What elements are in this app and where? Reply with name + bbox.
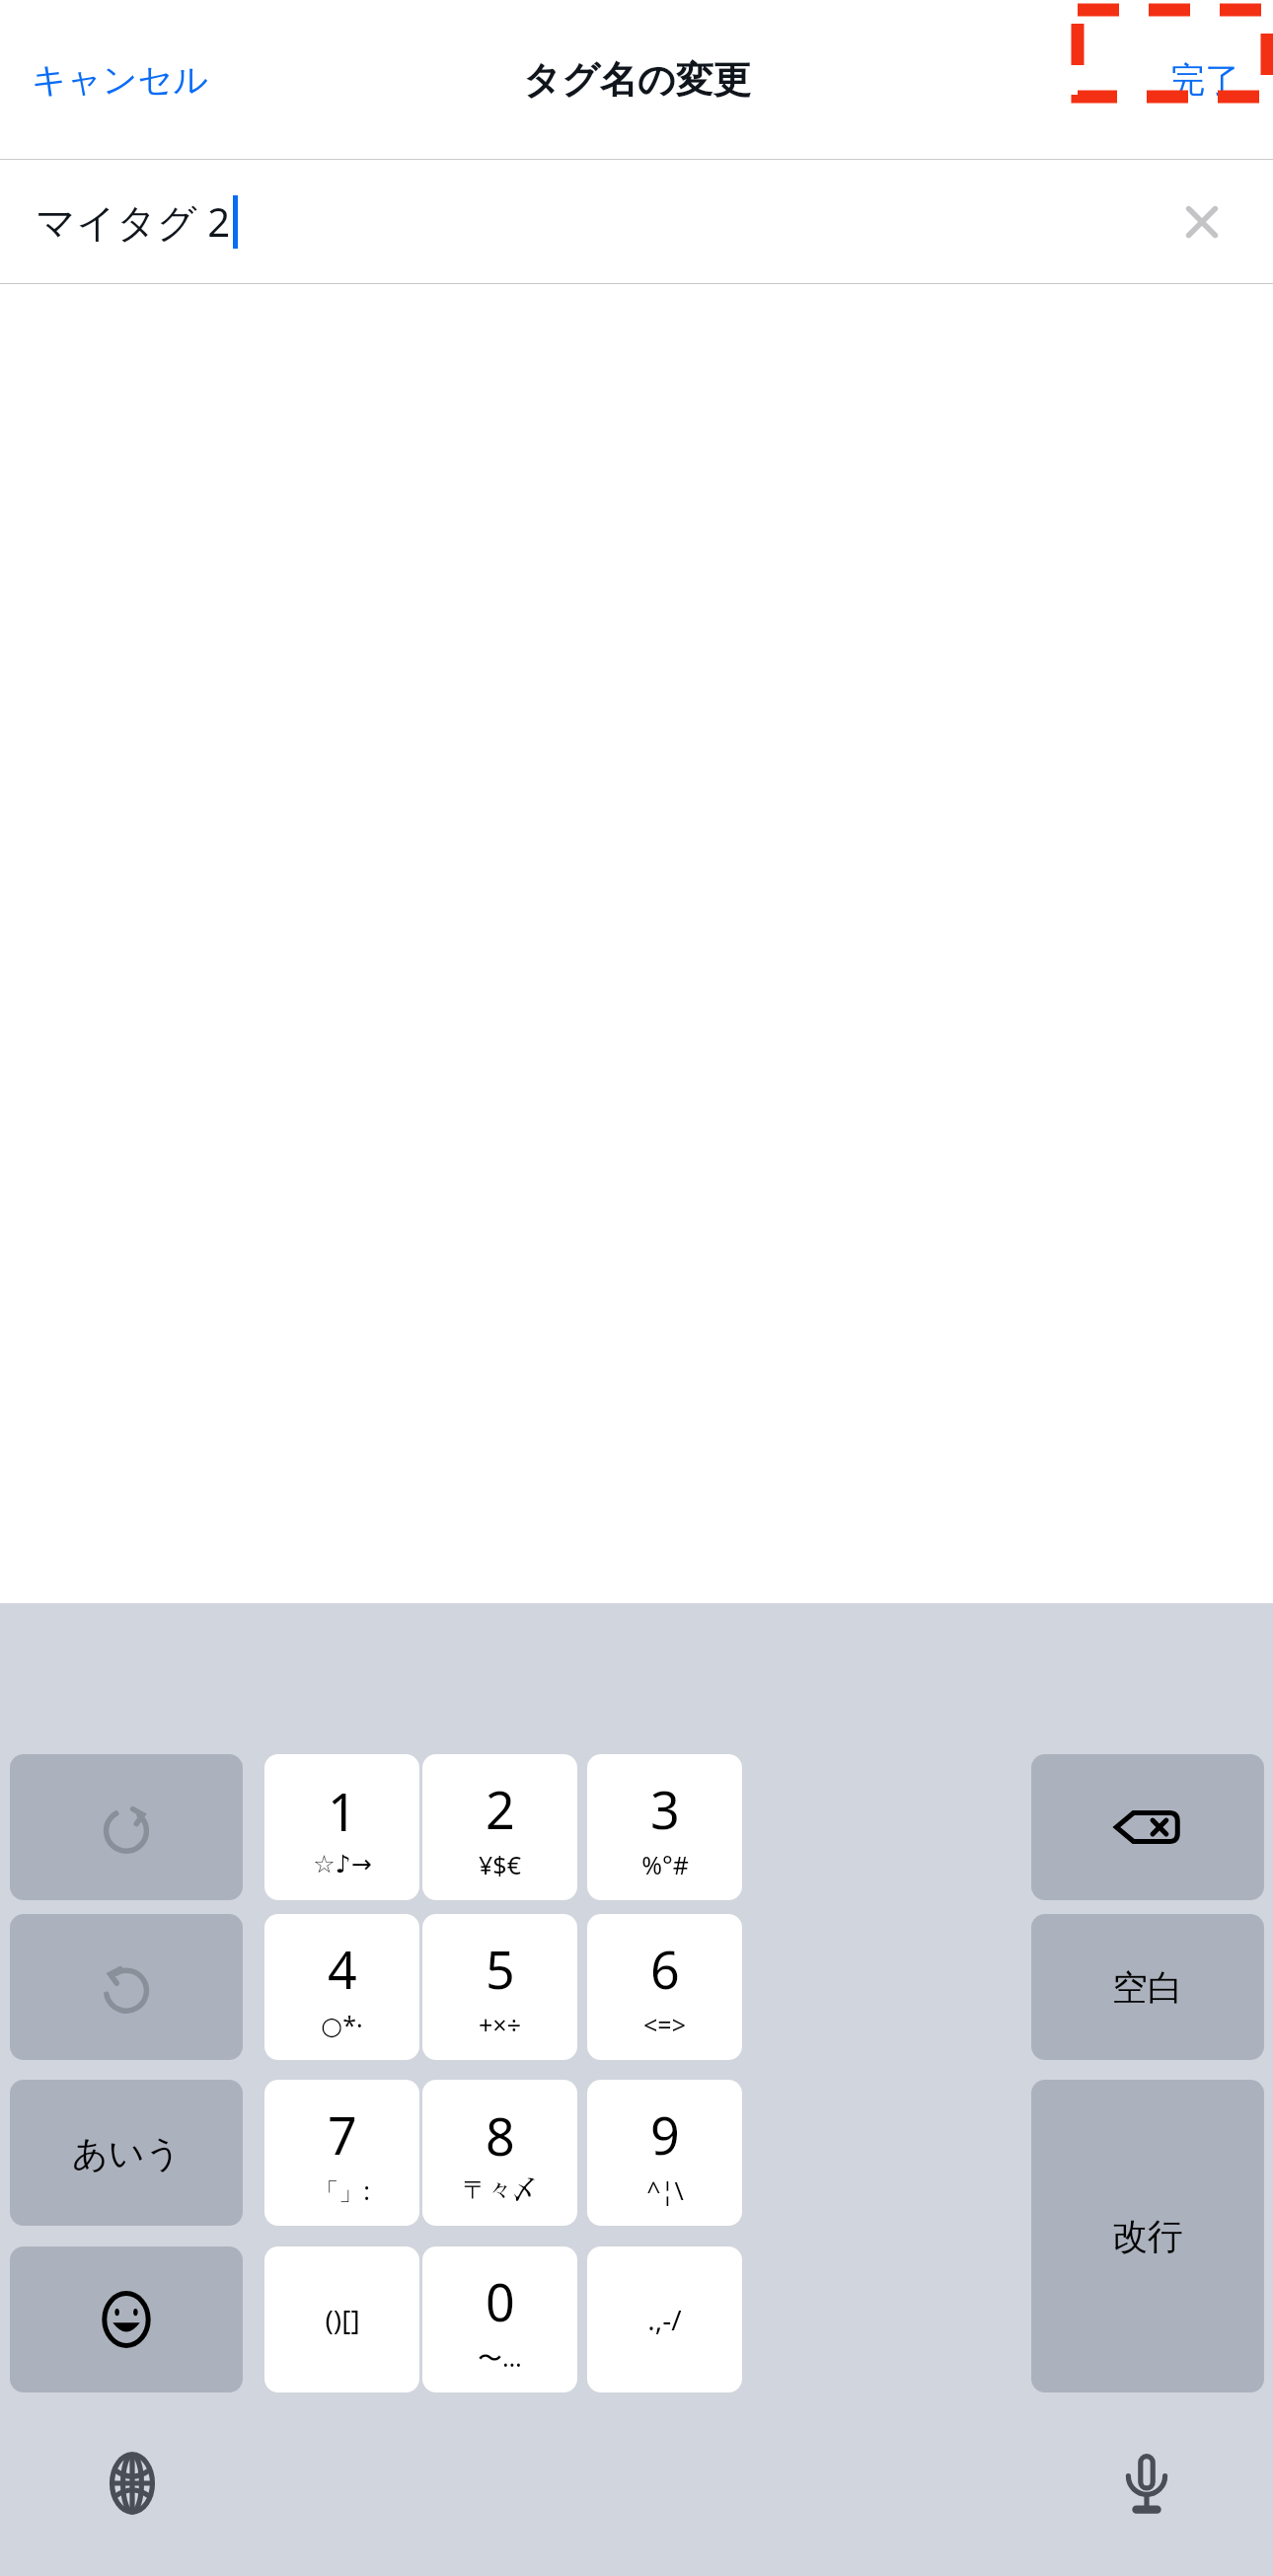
button[interactable]: Clear text bbox=[1166, 186, 1237, 258]
staticText: あいう bbox=[72, 2131, 182, 2175]
button[interactable]: キャンセル bbox=[14, 44, 227, 115]
staticText: %°# bbox=[641, 1848, 689, 1881]
button[interactable]: Redo bbox=[10, 1754, 243, 1900]
staticText: マイタグ 2 bbox=[36, 194, 231, 249]
button[interactable]: 9 bbox=[587, 2080, 742, 2226]
button[interactable]: 5 bbox=[422, 1914, 577, 2060]
staticText: 2 bbox=[486, 1774, 515, 1844]
staticText: ¥$€ bbox=[479, 1848, 521, 1881]
staticText: 6 bbox=[650, 1934, 680, 2004]
button[interactable]: ()[] bbox=[264, 2246, 419, 2392]
button[interactable]: 空白 bbox=[1031, 1914, 1264, 2060]
button[interactable]: Dictation bbox=[1099, 2436, 1194, 2531]
button[interactable]: .,-/ bbox=[587, 2246, 742, 2392]
staticText: 〜… bbox=[478, 2340, 522, 2374]
button[interactable]: Emoji bbox=[10, 2246, 243, 2392]
staticText: 8 bbox=[486, 2100, 515, 2171]
button[interactable]: 4 bbox=[264, 1914, 419, 2060]
button[interactable]: 完了 bbox=[1155, 44, 1255, 115]
button[interactable]: 7 bbox=[264, 2080, 419, 2226]
staticText: キャンセル bbox=[32, 58, 209, 102]
button[interactable]: 改行 bbox=[1031, 2080, 1264, 2392]
staticText: 3 bbox=[650, 1774, 680, 1844]
staticText: 7 bbox=[328, 2099, 357, 2170]
staticText: 0 bbox=[486, 2266, 515, 2336]
button[interactable]: 6 bbox=[587, 1914, 742, 2060]
button[interactable]: あいう bbox=[10, 2080, 243, 2226]
staticText: ☆♪→ bbox=[313, 1850, 372, 1878]
staticText: ()[] bbox=[325, 2301, 360, 2338]
staticText: <=> bbox=[643, 2008, 686, 2041]
staticText: 4 bbox=[328, 1934, 357, 2004]
staticText: 空白 bbox=[1112, 1965, 1183, 2010]
staticText: 〒々〆 bbox=[463, 2174, 537, 2205]
staticText: 1 bbox=[328, 1776, 357, 1846]
staticText: 5 bbox=[486, 1934, 515, 2004]
staticText: ○*· bbox=[321, 2008, 363, 2041]
button[interactable]: 3 bbox=[587, 1754, 742, 1900]
staticText: 9 bbox=[650, 2099, 680, 2170]
staticText: 改行 bbox=[1112, 2214, 1183, 2258]
staticText: ^¦\ bbox=[646, 2173, 684, 2207]
button[interactable]: 8 bbox=[422, 2080, 577, 2226]
staticText: .,-/ bbox=[647, 2301, 682, 2338]
staticText: タグ名の変更 bbox=[523, 56, 751, 104]
button[interactable]: Undo bbox=[10, 1914, 243, 2060]
staticText: 完了 bbox=[1170, 58, 1239, 102]
button[interactable]: Delete bbox=[1031, 1754, 1264, 1900]
button[interactable]: 0 bbox=[422, 2246, 577, 2392]
staticText: +×÷ bbox=[479, 2008, 521, 2041]
button[interactable]: 1 bbox=[264, 1754, 419, 1900]
button[interactable]: 2 bbox=[422, 1754, 577, 1900]
staticText: 「」: bbox=[314, 2173, 370, 2207]
button[interactable]: Switch keyboard language bbox=[85, 2436, 180, 2531]
